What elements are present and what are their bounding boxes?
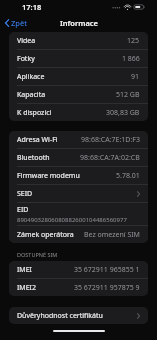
button[interactable]: Videa (9, 32, 148, 49)
staticText: Důvěryhodnost certifikátu (17, 311, 103, 321)
staticText: 98:68:CA:7A:02:CB (80, 153, 140, 163)
button[interactable]: Kapacita (9, 86, 148, 103)
button[interactable]: Firmware modemu (9, 167, 148, 184)
staticText: Zpět (11, 18, 27, 28)
button[interactable]: Důvěryhodnost certifikátu (9, 307, 148, 324)
staticText: Aplikace (17, 72, 45, 82)
staticText: Fotky (17, 54, 35, 64)
button[interactable]: EID (9, 203, 148, 225)
staticText: IMEI2 (17, 283, 36, 293)
button[interactable]: Zpět (0, 16, 32, 30)
staticText: Bez omezení SIM (84, 230, 140, 240)
staticText: 125 (127, 36, 140, 46)
staticText: K dispozici (17, 108, 52, 118)
staticText: Firmware modemu (17, 171, 80, 181)
staticText: 17:18 (22, 2, 42, 12)
button[interactable]: IMEI (9, 261, 148, 278)
staticText: 91 (131, 72, 140, 82)
staticText: 308,83 GB (106, 108, 140, 118)
staticText: Zámek operátora (17, 230, 74, 240)
staticText: 35 672911 957875 9 (74, 283, 140, 293)
button[interactable]: Adresa Wi-Fi (9, 131, 148, 148)
other: Open Důvěryhodnost certifikátu (137, 313, 140, 319)
staticText: Kapacita (17, 90, 46, 100)
button[interactable]: Fotky (9, 50, 148, 67)
staticText: Adresa Wi-Fi (17, 135, 58, 145)
staticText: IMEI (17, 265, 32, 275)
staticText: 1 866 (122, 54, 140, 64)
staticText: EID (17, 205, 29, 215)
button[interactable]: IMEI2 (9, 279, 148, 296)
button[interactable]: Aplikace (9, 68, 148, 85)
staticText: DOSTUPNÉ SIM (17, 251, 58, 258)
staticText: 5.78.01 (116, 171, 140, 181)
button[interactable]: Zámek operátora (9, 226, 148, 243)
other: Open SEID (137, 191, 140, 197)
staticText: 89049032806080882600104486560977 (17, 216, 127, 224)
staticText: Informace (60, 18, 98, 28)
button[interactable]: Bluetooth (9, 149, 148, 166)
staticText: Videa (17, 36, 36, 46)
staticText: Bluetooth (17, 153, 50, 163)
staticText: 35 672911 965855 1 (74, 265, 140, 275)
button[interactable]: SEID (9, 185, 148, 202)
button[interactable]: K dispozici (9, 104, 148, 121)
staticText: 98:68:CA:7E:1D:F3 (81, 135, 140, 145)
staticText: SEID (17, 189, 33, 199)
staticText: 512 GB (116, 90, 140, 100)
